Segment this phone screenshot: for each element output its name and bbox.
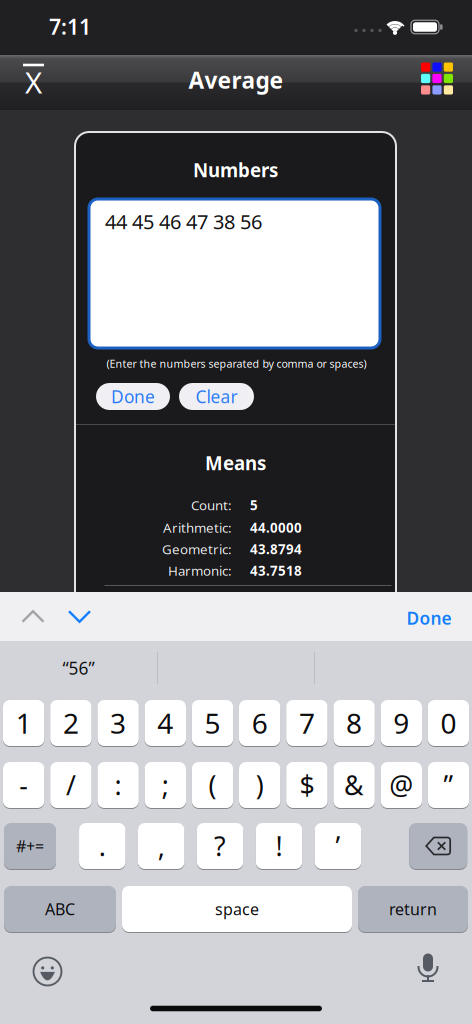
staticText: & xyxy=(344,767,364,803)
staticText: ; xyxy=(162,767,169,803)
staticText: “56” xyxy=(62,656,94,679)
button[interactable]: Clear xyxy=(179,383,254,410)
button[interactable]: 0 xyxy=(428,699,469,747)
staticText: 9 xyxy=(393,704,409,742)
button[interactable]: 4 xyxy=(145,699,186,747)
staticText: Arithmetic: xyxy=(163,519,232,536)
staticText: Clear xyxy=(195,385,237,408)
button[interactable]: : xyxy=(97,761,139,809)
staticText: 5 xyxy=(204,704,220,742)
button[interactable]: ABC xyxy=(4,885,116,933)
button[interactable]: Dictation xyxy=(416,953,440,985)
staticText: / xyxy=(66,767,76,803)
staticText: @ xyxy=(389,767,413,803)
button[interactable]: 6 xyxy=(239,699,280,747)
staticText: Average xyxy=(188,65,283,95)
staticText: Means xyxy=(205,451,266,475)
button[interactable]: 5 xyxy=(192,699,233,747)
staticText: , xyxy=(158,828,165,864)
button[interactable]: Colors xyxy=(418,59,456,97)
button[interactable]: ” xyxy=(428,761,469,809)
staticText: 44 45 46 47 38 56 xyxy=(105,208,262,235)
staticText: ( xyxy=(208,767,216,803)
staticText: X xyxy=(25,62,42,101)
button[interactable]: / xyxy=(50,761,92,809)
staticText: ! xyxy=(275,828,282,864)
staticText: 4 xyxy=(157,704,173,742)
staticText: ” xyxy=(443,767,453,803)
staticText: 2 xyxy=(63,704,79,742)
button[interactable]: Numbers input xyxy=(89,199,380,348)
button[interactable]: Previous field xyxy=(14,603,51,630)
button[interactable]: Done xyxy=(400,600,457,635)
staticText: Harmonic: xyxy=(168,562,232,579)
button[interactable]: @ xyxy=(381,761,422,809)
staticText: Done xyxy=(111,385,155,408)
button[interactable]: return xyxy=(358,885,468,933)
staticText: 7 xyxy=(299,704,315,742)
staticText: Count: xyxy=(191,496,232,514)
button[interactable]: Delete xyxy=(409,822,467,870)
button[interactable]: - xyxy=(3,761,44,809)
staticText: space xyxy=(215,898,259,920)
button[interactable]: . xyxy=(79,822,125,870)
staticText: #+= xyxy=(16,835,44,857)
button[interactable]: Next field xyxy=(61,603,98,630)
staticText: . xyxy=(99,828,106,864)
staticText: return xyxy=(389,898,437,920)
staticText: ’ xyxy=(335,828,340,864)
staticText: 43.8794 xyxy=(250,540,302,558)
staticText: 3 xyxy=(110,704,126,742)
button[interactable]: 2 xyxy=(50,699,92,747)
staticText: 7:11 xyxy=(49,12,91,41)
staticText: 1 xyxy=(16,704,32,742)
button[interactable]: ’ xyxy=(315,822,361,870)
staticText: Numbers xyxy=(193,158,278,182)
staticText: Geometric: xyxy=(162,540,232,558)
button[interactable]: , xyxy=(138,822,184,870)
button[interactable]: Mean xyxy=(16,56,50,100)
staticText: $ xyxy=(299,767,314,803)
button[interactable]: & xyxy=(333,761,375,809)
button[interactable]: 7 xyxy=(286,699,328,747)
button[interactable]: ( xyxy=(192,761,233,809)
button[interactable]: “56” xyxy=(3,644,153,692)
button[interactable]: 9 xyxy=(381,699,422,747)
button[interactable]: 8 xyxy=(333,699,375,747)
staticText: ABC xyxy=(45,898,75,920)
button[interactable]: ! xyxy=(256,822,302,870)
staticText: 6 xyxy=(252,704,268,742)
staticText: 0 xyxy=(440,704,456,742)
button[interactable]: ? xyxy=(197,822,243,870)
staticText: 8 xyxy=(346,704,362,742)
staticText: : xyxy=(115,767,122,803)
button[interactable]: Done xyxy=(96,383,170,410)
staticText: Done xyxy=(406,606,451,629)
staticText: ) xyxy=(256,767,264,803)
staticText: 43.7518 xyxy=(250,562,302,579)
staticText: 44.0000 xyxy=(250,519,302,536)
staticText: (Enter the numbers separated by comma or… xyxy=(106,356,366,371)
button[interactable]: ) xyxy=(239,761,280,809)
staticText: - xyxy=(19,767,28,803)
button[interactable]: $ xyxy=(286,761,328,809)
button[interactable]: ; xyxy=(145,761,186,809)
staticText: 5 xyxy=(250,496,258,514)
staticText: ? xyxy=(214,828,226,864)
button[interactable]: #+= xyxy=(4,822,56,870)
button[interactable]: Emoji xyxy=(32,956,62,986)
button[interactable]: 3 xyxy=(97,699,139,747)
button[interactable]: 1 xyxy=(3,699,44,747)
button[interactable]: space xyxy=(122,885,352,933)
